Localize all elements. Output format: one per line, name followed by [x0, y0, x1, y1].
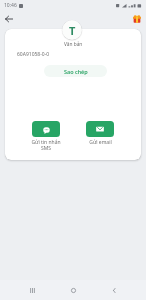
button[interactable]: Sao chép [44, 65, 107, 77]
staticText: T [69, 23, 76, 38]
staticText: 10:46 [4, 2, 17, 9]
staticText: 60A91058-0-0 [17, 51, 50, 58]
button[interactable]: Khuyến mãi [129, 11, 145, 27]
button[interactable]: Recents [23, 281, 41, 299]
button[interactable]: Back [1, 11, 17, 27]
button[interactable]: Back [105, 281, 123, 299]
button[interactable] [32, 121, 60, 137]
staticText: Gửi tin nhắn SMS [31, 139, 61, 152]
button[interactable] [86, 121, 114, 137]
staticText: Gửi email [89, 139, 112, 146]
staticText: Văn bản [64, 41, 83, 48]
staticText: Sao chép [64, 68, 88, 75]
button[interactable]: Home [64, 281, 82, 299]
